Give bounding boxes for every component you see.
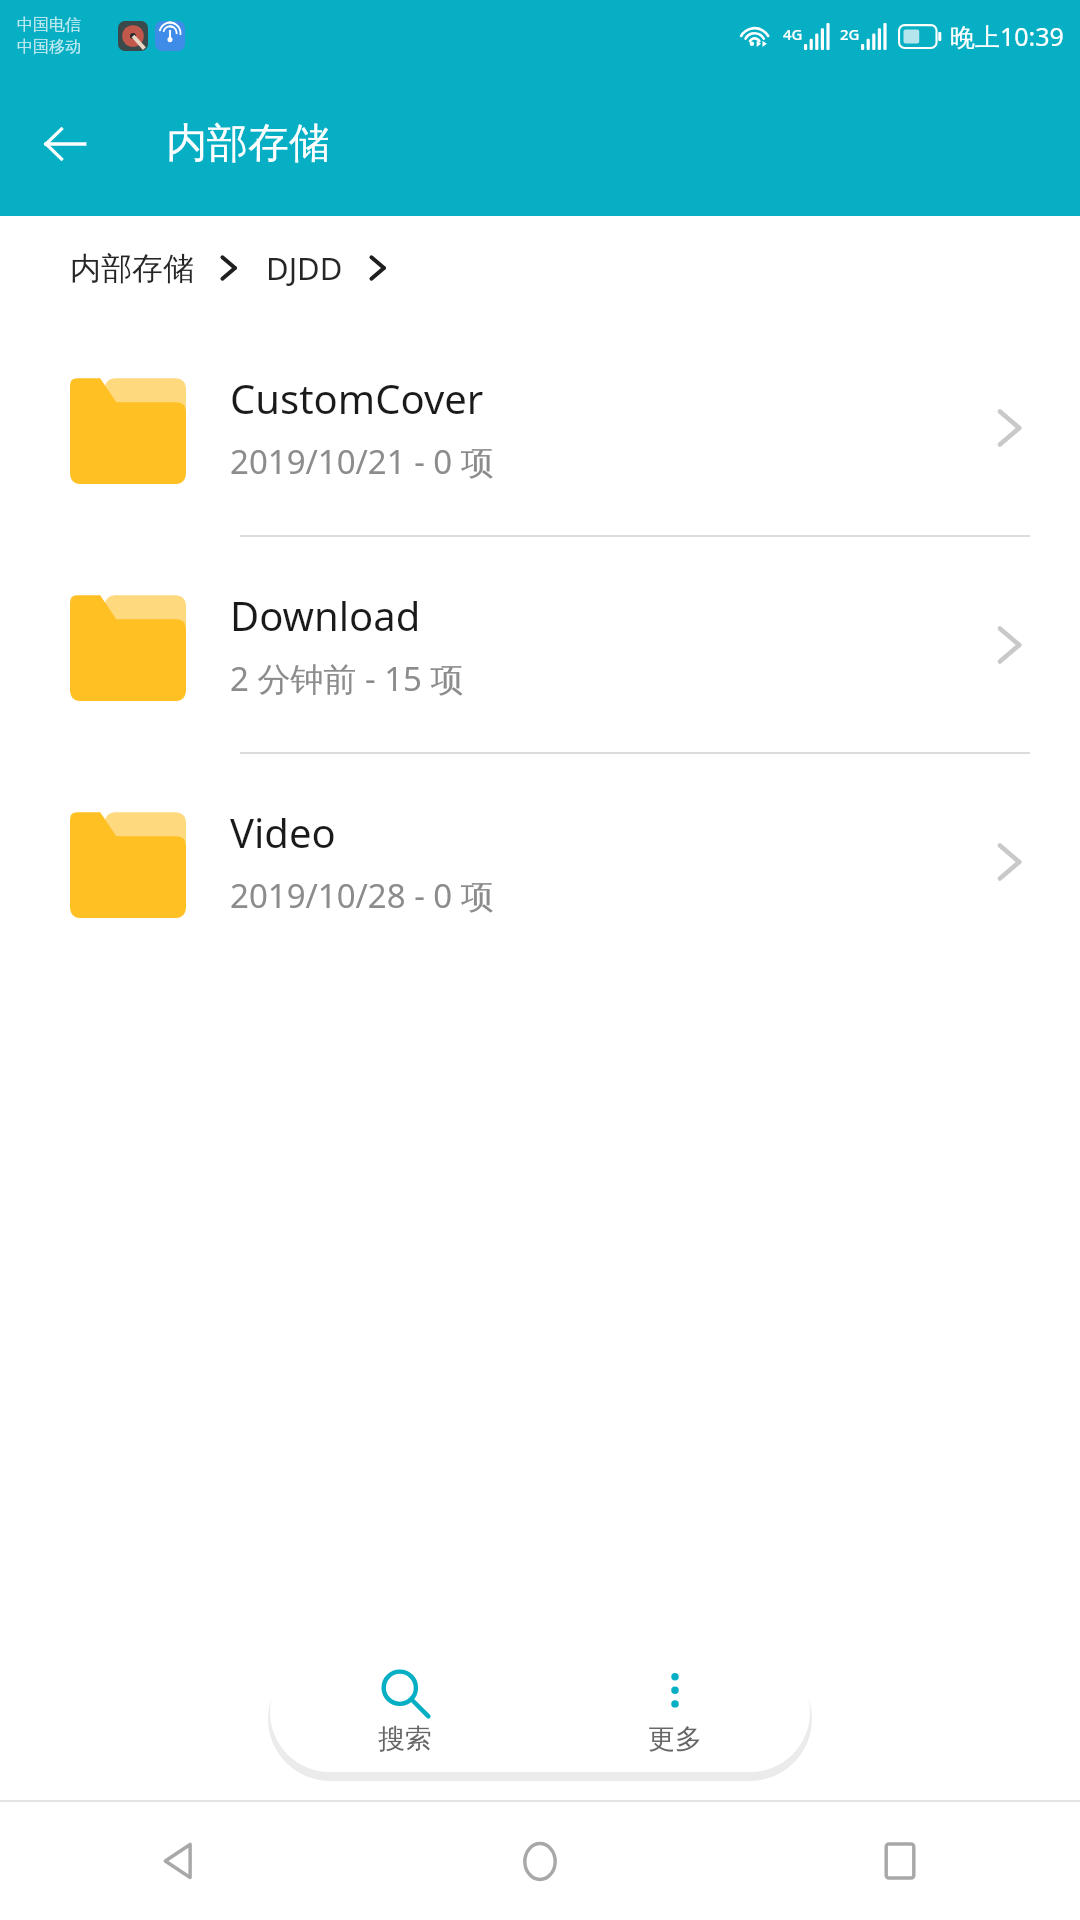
- button[interactable]: 内部存储: [70, 249, 194, 288]
- button[interactable]: 打开 CustomCover: [968, 386, 1052, 470]
- staticText: Download: [230, 588, 421, 642]
- staticText: 2019/10/28 - 0 项: [230, 873, 494, 918]
- staticText: 更多: [648, 1722, 702, 1756]
- button[interactable]: 更多: [540, 1652, 810, 1772]
- staticText: 搜索: [378, 1722, 432, 1756]
- staticText: 2019/10/21 - 0 项: [230, 439, 494, 484]
- staticText: 内部存储: [166, 118, 330, 170]
- staticText: 中国移动: [17, 37, 81, 57]
- button[interactable]: 主屏幕: [360, 1802, 720, 1920]
- staticText: Video: [230, 805, 336, 859]
- staticText: 2 分钟前 - 15 项: [230, 656, 464, 701]
- button[interactable]: 返回: [34, 113, 96, 175]
- button[interactable]: 打开 Download: [968, 603, 1052, 687]
- button[interactable]: CustomCover: [0, 320, 1080, 535]
- staticText: 2G: [840, 24, 860, 44]
- button[interactable]: Download: [0, 537, 1080, 752]
- staticText: CustomCover: [230, 371, 484, 425]
- button[interactable]: 最近任务: [720, 1802, 1080, 1920]
- button[interactable]: 返回: [0, 1802, 360, 1920]
- staticText: 内部存储: [70, 249, 194, 288]
- staticText: 晚上10:39: [950, 19, 1064, 53]
- button[interactable]: DJDD: [266, 247, 343, 289]
- button[interactable]: 打开 Video: [968, 820, 1052, 904]
- button[interactable]: Video: [0, 754, 1080, 969]
- staticText: 中国电信: [17, 15, 81, 35]
- staticText: 4G: [783, 24, 803, 44]
- staticText: DJDD: [266, 247, 343, 289]
- button[interactable]: 搜索: [270, 1652, 540, 1772]
